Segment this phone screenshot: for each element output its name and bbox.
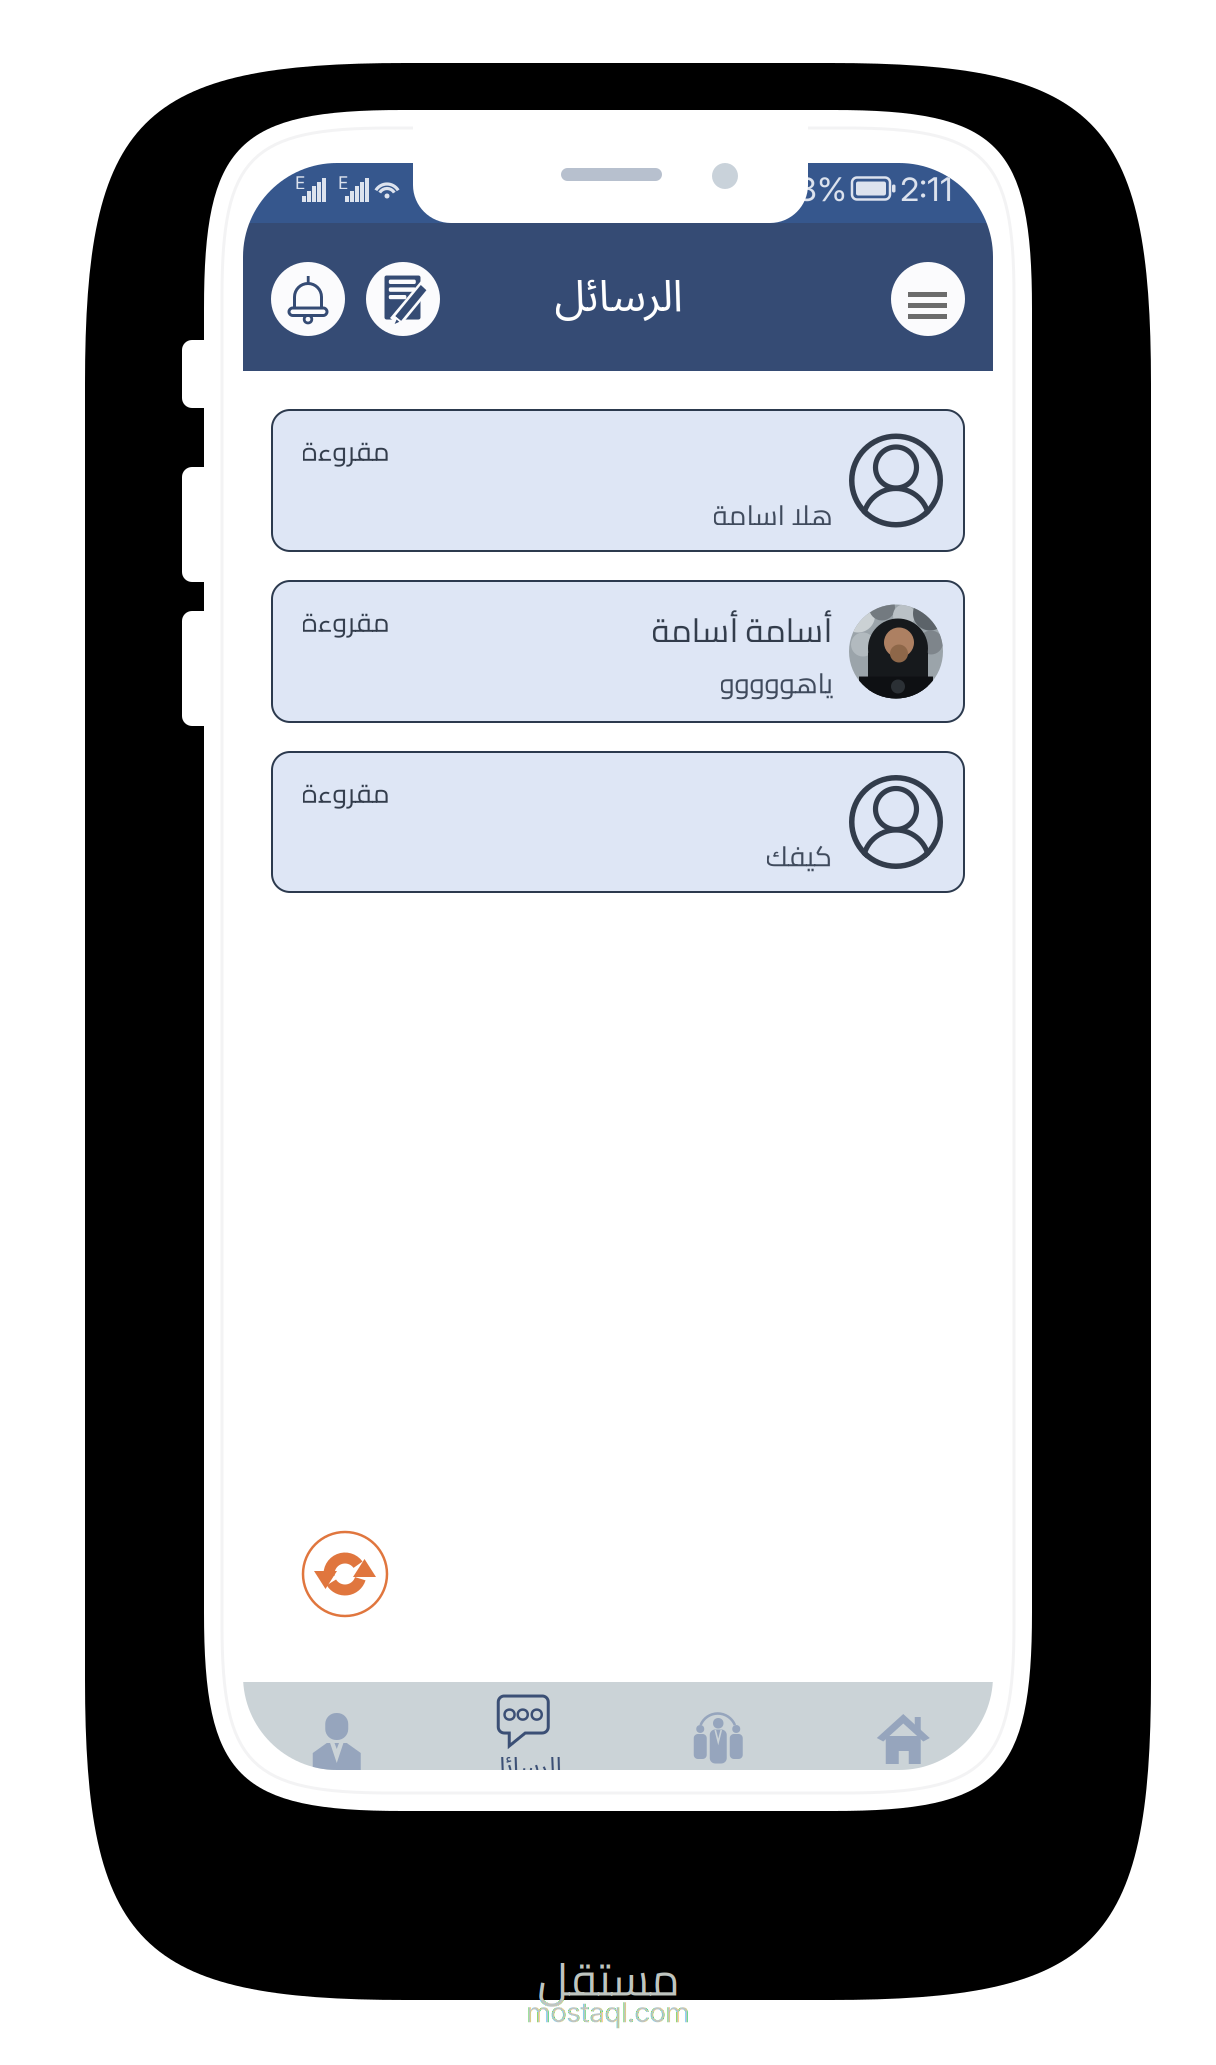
- staticText: الرسائل: [554, 250, 682, 343]
- staticText: مقروءة: [301, 768, 389, 818]
- staticText: مقروءة: [301, 597, 389, 647]
- staticText: هلا اسامة: [712, 489, 832, 541]
- button[interactable]: مقروءة: [272, 581, 964, 722]
- staticText: 48%: [776, 169, 847, 209]
- staticText: مقروءة: [301, 426, 389, 476]
- staticText: مستقل: [537, 1936, 679, 2021]
- button[interactable]: مقروءة: [272, 410, 964, 551]
- staticText: كيفك: [765, 830, 832, 882]
- staticText: 2:11: [900, 169, 953, 209]
- button[interactable]: Compose: [366, 262, 440, 336]
- button[interactable]: Refresh: [301, 1530, 389, 1618]
- button[interactable]: Notifications: [271, 262, 345, 336]
- button[interactable]: الرسائل: [430, 1682, 618, 1770]
- button[interactable]: Home: [805, 1682, 993, 1770]
- staticText: ياهووووو: [719, 657, 832, 709]
- staticText: E: [338, 172, 348, 193]
- staticText: الرسائل: [487, 1740, 561, 1794]
- staticText: mostaql.com: [526, 1995, 689, 2029]
- button[interactable]: Menu: [891, 262, 965, 336]
- button[interactable]: مقروءة: [272, 752, 964, 892]
- button[interactable]: Groups: [618, 1682, 805, 1770]
- button[interactable]: Profile: [243, 1682, 430, 1770]
- staticText: E: [295, 172, 305, 193]
- staticText: أسامة أسامة: [651, 599, 832, 661]
